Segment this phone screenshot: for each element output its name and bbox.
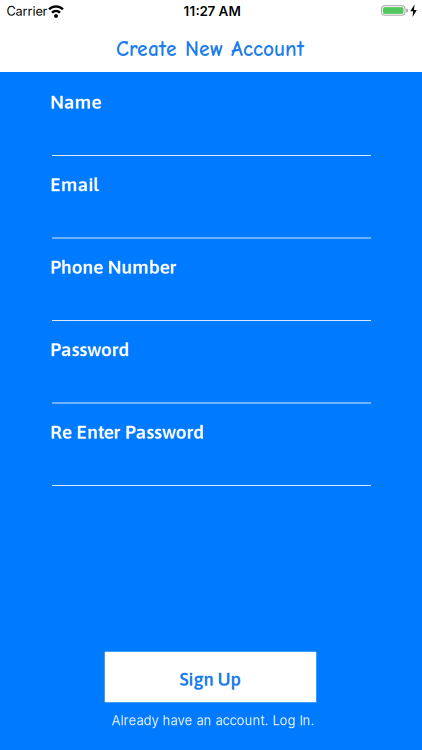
staticText: Sign Up <box>179 668 241 690</box>
staticText: Password <box>50 338 129 360</box>
button[interactable]: Re Enter Password text field <box>52 446 371 486</box>
button[interactable]: Password text field <box>52 363 371 403</box>
staticText: Create New Account <box>116 37 304 61</box>
staticText: Already have an account. Log In. <box>111 713 314 728</box>
staticText: Carrier <box>6 3 47 19</box>
staticText: Re Enter Password <box>50 420 204 443</box>
button[interactable]: Email text field <box>52 198 371 238</box>
button[interactable]: Already have an account. Log In. <box>111 713 314 728</box>
staticText: Phone Number <box>50 255 176 278</box>
staticText: 11:27 AM <box>183 3 240 19</box>
button[interactable]: Phone Number text field <box>52 281 371 321</box>
button[interactable]: Name text field <box>52 116 371 156</box>
button[interactable]: Sign Up <box>105 652 316 702</box>
staticText: Name <box>50 90 101 113</box>
staticText: Email <box>50 173 99 195</box>
